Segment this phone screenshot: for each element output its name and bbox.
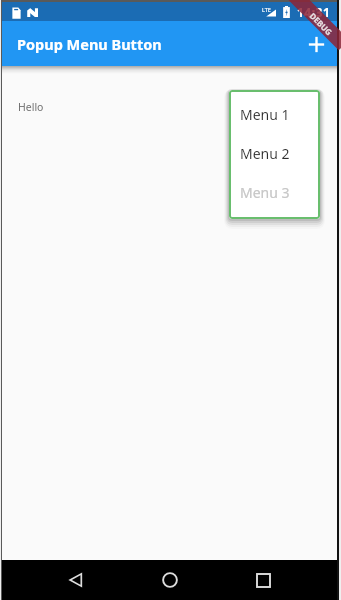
button[interactable]: Back <box>58 562 94 598</box>
staticText: 14:31 <box>297 4 331 20</box>
staticText: Menu 1 <box>240 105 290 124</box>
button[interactable]: Menu 3 <box>229 173 320 212</box>
button[interactable]: Menu 2 <box>229 134 320 173</box>
button[interactable]: Recents <box>245 562 281 598</box>
button[interactable]: Home <box>152 562 188 598</box>
staticText: Menu 2 <box>240 144 290 163</box>
button[interactable]: Menu 1 <box>229 95 320 134</box>
staticText: Menu 3 <box>240 183 290 202</box>
staticText: Hello <box>18 100 44 114</box>
staticText: DEBUG <box>308 10 335 38</box>
button[interactable]: Add <box>298 26 334 62</box>
staticText: Popup Menu Button <box>17 34 162 54</box>
staticText: LTE <box>262 6 271 13</box>
